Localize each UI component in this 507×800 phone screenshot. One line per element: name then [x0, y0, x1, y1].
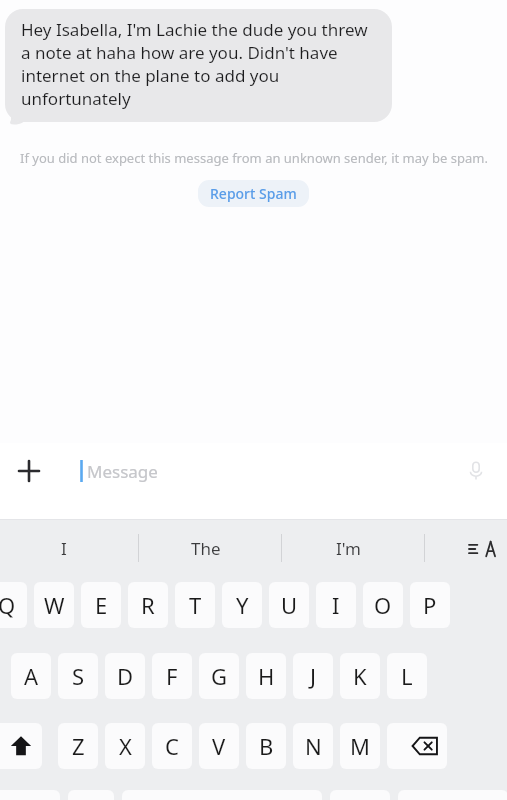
staticText: E [95, 590, 108, 620]
button[interactable]: S [58, 653, 98, 699]
staticText: B [259, 731, 274, 761]
staticText: The [191, 537, 221, 560]
button[interactable]: I [0, 520, 127, 577]
staticText: F [166, 661, 178, 691]
button[interactable]: F [152, 653, 192, 699]
button[interactable]: E [81, 582, 121, 628]
staticText: L [401, 661, 413, 691]
button[interactable]: I'm [285, 520, 412, 577]
staticText: C [165, 731, 179, 761]
button[interactable]: U [269, 582, 309, 628]
button[interactable]: Y [222, 582, 262, 628]
staticText: J [310, 661, 317, 691]
staticText: Hey Isabella, I'm Lachie the dude you th… [21, 18, 378, 110]
button[interactable]: Message [80, 451, 460, 491]
button[interactable]: J [293, 653, 333, 699]
staticText: Q [0, 590, 16, 620]
button[interactable]: L [387, 653, 427, 699]
button[interactable]: N [293, 723, 333, 769]
staticText: K [353, 661, 367, 691]
staticText: T [189, 590, 202, 620]
staticText: I'm [336, 537, 361, 560]
staticText: U [281, 590, 298, 620]
staticText: Report Spam [210, 184, 297, 203]
staticText: I [332, 590, 340, 620]
button[interactable]: Report Spam [198, 180, 309, 207]
staticText: R [141, 590, 155, 620]
button[interactable]: Shift [0, 723, 42, 769]
button[interactable]: K [340, 653, 380, 699]
button[interactable]: R [128, 582, 168, 628]
button[interactable]: Add attachment [8, 450, 50, 492]
button[interactable]: Hey Isabella, I'm Lachie the dude you th… [5, 9, 392, 122]
staticText: X [119, 731, 132, 761]
button[interactable]: H [246, 653, 286, 699]
button[interactable]: Q [0, 582, 27, 628]
staticText: Message [87, 460, 158, 483]
button[interactable]: Z [58, 723, 98, 769]
button[interactable]: B [246, 723, 286, 769]
staticText: O [374, 590, 392, 620]
staticText: N [305, 731, 322, 761]
staticText: S [72, 661, 85, 691]
staticText: H [258, 661, 275, 691]
button[interactable]: V [199, 723, 239, 769]
staticText: A [24, 661, 39, 691]
button[interactable]: M [340, 723, 380, 769]
button[interactable]: D [105, 653, 145, 699]
button[interactable]: I [316, 582, 356, 628]
button[interactable]: A [11, 653, 51, 699]
button[interactable]: T [175, 582, 215, 628]
button[interactable]: Text formatting [468, 532, 502, 566]
button[interactable]: C [152, 723, 192, 769]
button[interactable]: W [34, 582, 74, 628]
staticText: If you did not expect this message from … [20, 149, 488, 167]
staticText: M [350, 731, 370, 761]
button[interactable]: P [410, 582, 450, 628]
button[interactable]: X [105, 723, 145, 769]
button[interactable]: G [199, 653, 239, 699]
button[interactable]: The [142, 520, 269, 577]
button[interactable]: Backspace [387, 723, 447, 769]
staticText: W [44, 590, 65, 620]
staticText: G [211, 661, 228, 691]
staticText: D [117, 661, 134, 691]
button[interactable]: O [363, 582, 403, 628]
staticText: V [212, 731, 226, 761]
staticText: I [61, 537, 67, 560]
staticText: Y [236, 590, 249, 620]
staticText: Z [72, 731, 85, 761]
staticText: P [423, 590, 437, 620]
button[interactable]: Voice message [456, 451, 496, 491]
